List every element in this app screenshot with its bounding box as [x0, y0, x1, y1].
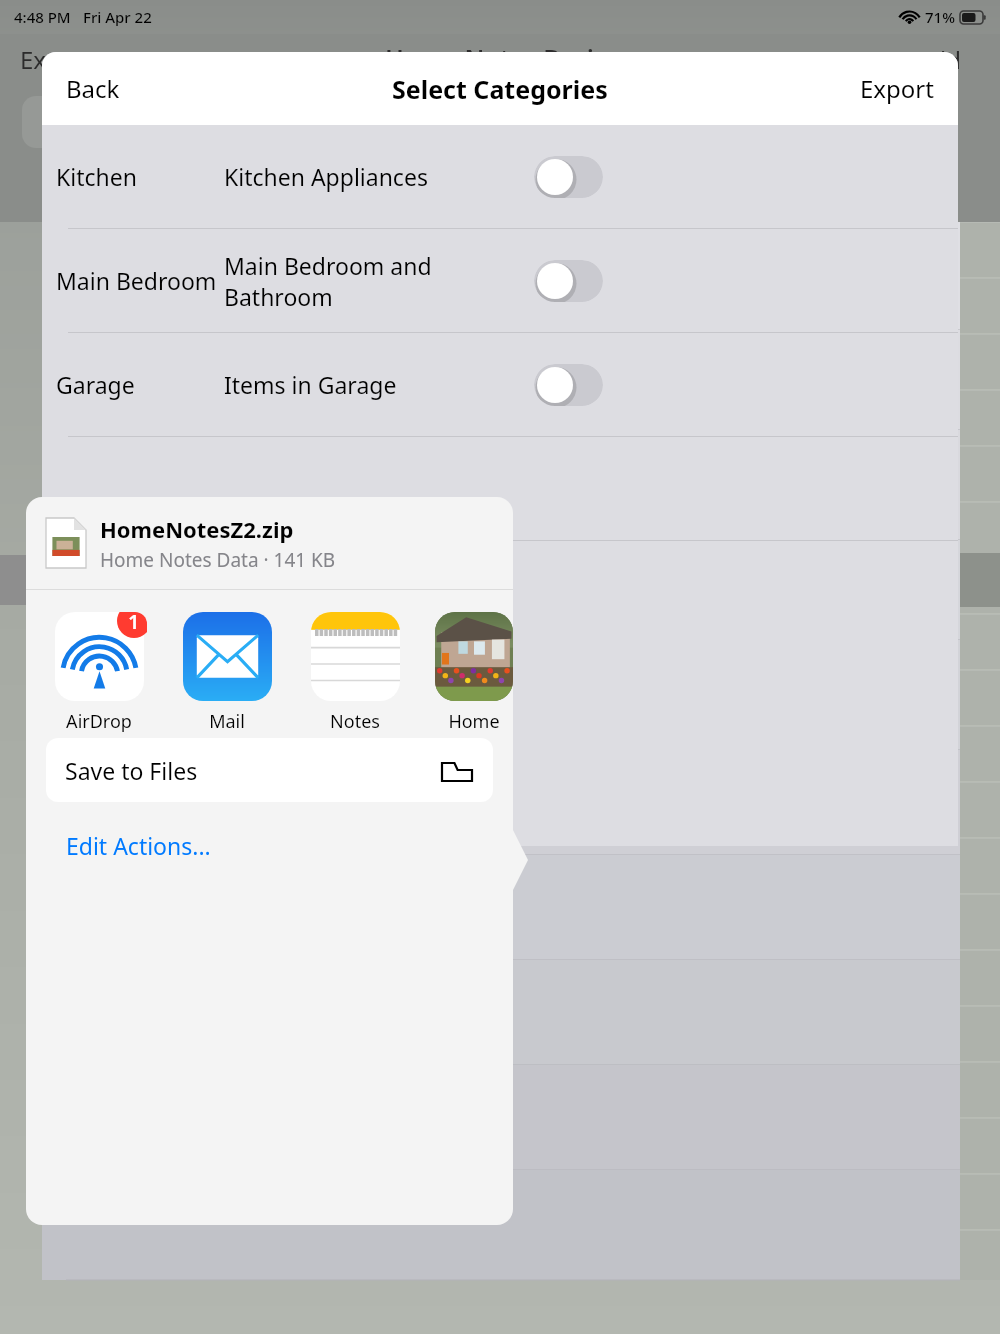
staticText: 71% [925, 7, 955, 27]
staticText: Save to Files [65, 755, 198, 786]
button[interactable]: Save to Files [46, 738, 493, 802]
staticText: Export [860, 72, 934, 105]
staticText: Select Categories [392, 72, 608, 106]
button[interactable]: Toggle category [534, 364, 603, 406]
staticText: Back [66, 72, 120, 105]
staticText: Kitchen [56, 161, 224, 192]
staticText: AirDrop [66, 709, 132, 734]
staticText: Garage [56, 369, 224, 400]
staticText: Notes [330, 709, 380, 734]
staticText: Fri Apr 22 [83, 7, 152, 27]
button[interactable]: Garage [42, 333, 958, 436]
staticText: Main Bedroom and Bathroom [224, 250, 534, 312]
button[interactable]: Export [846, 64, 948, 113]
button[interactable]: Mail [179, 612, 275, 734]
button[interactable]: Home Notes Basic [435, 612, 513, 738]
staticText: Edit Actions... [66, 830, 211, 861]
button[interactable]: Edit Actions... [46, 822, 231, 869]
staticText: HomeNotesZ2.zip [100, 514, 294, 544]
button[interactable]: Back [52, 64, 134, 113]
staticText: Home Notes Basic [435, 709, 513, 738]
button[interactable]: Notes [307, 612, 403, 734]
button[interactable]: Kitchen [42, 125, 958, 228]
staticText: Kitchen Appliances [224, 161, 534, 192]
button[interactable]: Toggle category [534, 260, 603, 302]
staticText: 4:48 PM [14, 7, 71, 27]
button[interactable]: Main Bedroom [42, 229, 958, 332]
button[interactable]: Toggle category [534, 156, 603, 198]
staticText: Main Bedroom [56, 265, 224, 296]
staticText: ld [940, 43, 961, 76]
staticText: Home Notes Data · 141 KB [100, 547, 336, 573]
staticText: Ex [20, 43, 47, 76]
staticText: 1 [128, 612, 140, 635]
staticText: Items in Garage [224, 369, 534, 400]
staticText: Mail [209, 709, 245, 734]
staticText: Home Notes Basic [385, 41, 607, 75]
button[interactable]: 1 [51, 612, 147, 734]
button[interactable]: HomeNotesZ2.zip [26, 497, 513, 589]
